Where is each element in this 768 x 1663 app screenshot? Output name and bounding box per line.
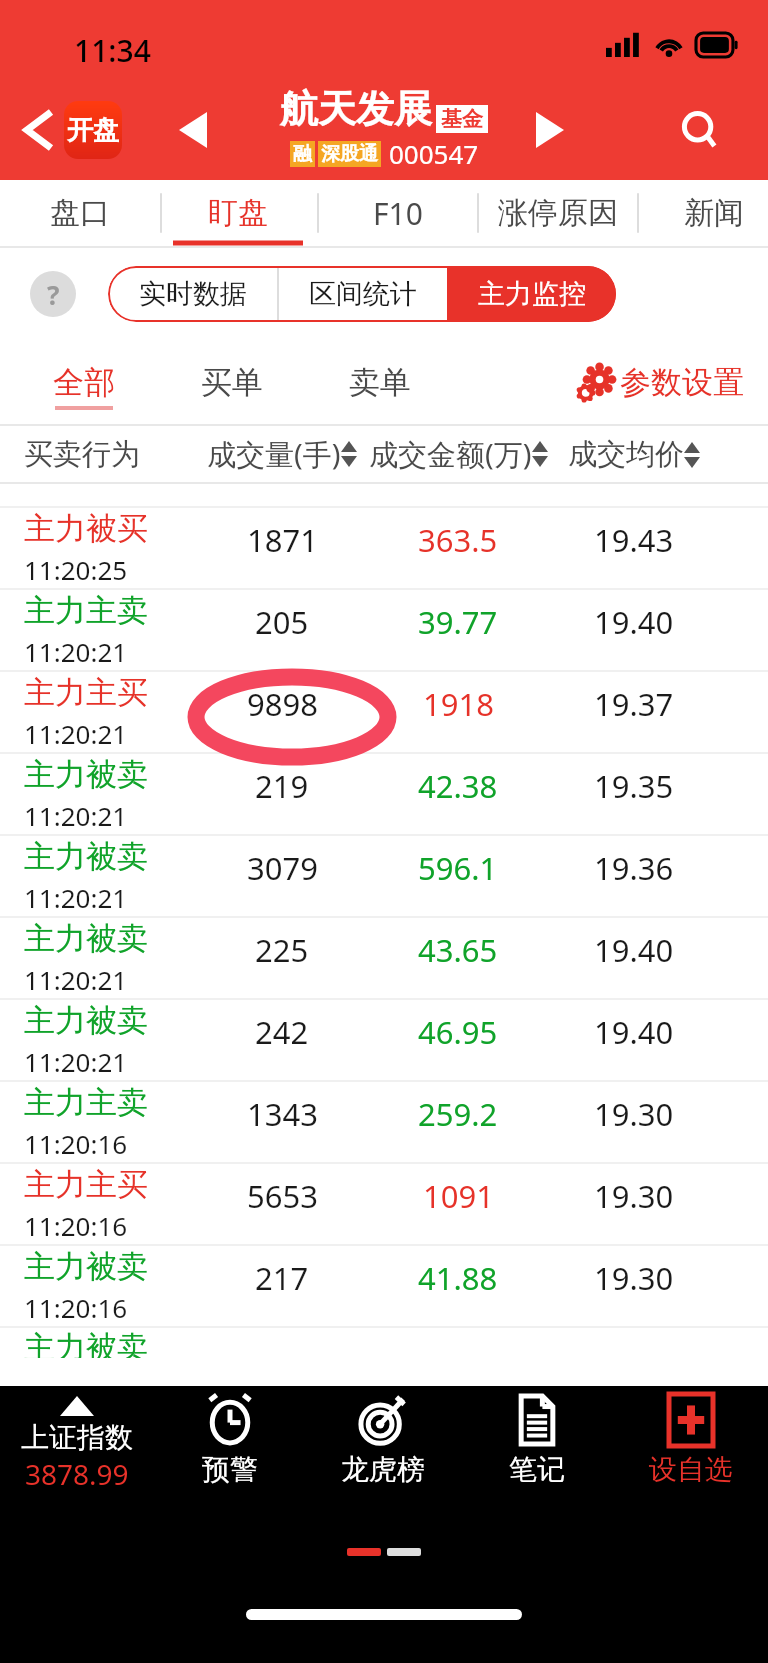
button[interactable]: 开盘 xyxy=(64,101,122,159)
staticText: 深股通 xyxy=(321,142,378,166)
button[interactable]: 主力主卖 xyxy=(0,590,768,670)
staticText: 主力监控 xyxy=(478,277,586,311)
staticText: 盯盘 xyxy=(208,194,268,232)
staticText: 11:20:16 xyxy=(24,1290,128,1325)
staticText: 259.2 xyxy=(418,1093,498,1135)
staticText: 11:20:21 xyxy=(24,798,128,833)
staticText: 涨停原因 xyxy=(498,194,618,232)
staticText: 1091 xyxy=(423,1175,494,1217)
button[interactable]: 主力主卖 xyxy=(0,1082,768,1162)
button[interactable]: 新闻 xyxy=(652,180,768,246)
staticText: 开盘 xyxy=(67,114,119,147)
button[interactable]: 笔记 xyxy=(460,1386,614,1506)
button[interactable]: 设自选 xyxy=(614,1386,768,1506)
button[interactable]: 主力被卖 xyxy=(0,918,768,998)
button[interactable]: 区间统计 xyxy=(278,266,447,322)
button[interactable]: 卖单 xyxy=(320,340,440,424)
staticText: 主力主买 xyxy=(24,1165,148,1204)
button[interactable]: 盘口 xyxy=(18,180,142,246)
button[interactable]: 主力被卖 xyxy=(0,1000,768,1080)
staticText: 217 xyxy=(255,1257,309,1299)
staticText: 19.40 xyxy=(594,1011,674,1053)
staticText: 19.30 xyxy=(594,1257,674,1299)
staticText: 主力主卖 xyxy=(24,591,148,630)
staticText: 46.95 xyxy=(418,1011,498,1053)
staticText: 主力主买 xyxy=(24,673,148,712)
staticText: 11:20:16 xyxy=(24,1126,128,1161)
button[interactable]: 全部 xyxy=(24,340,144,424)
staticText: 参数设置 xyxy=(620,363,744,402)
staticText: 主力被买 xyxy=(24,509,148,548)
button[interactable]: 上证指数 xyxy=(0,1386,153,1506)
staticText: 主力被卖 xyxy=(24,837,148,876)
staticText: 11:34 xyxy=(74,30,151,71)
staticText: 19.35 xyxy=(594,765,674,807)
staticText: 主力被卖 xyxy=(24,1328,148,1358)
button[interactable]: 涨停原因 xyxy=(496,180,620,246)
button[interactable]: 主力被买 xyxy=(0,508,768,588)
button[interactable]: 盯盘 xyxy=(176,180,300,246)
staticText: 19.30 xyxy=(594,1175,674,1217)
button[interactable]: 主力主买 xyxy=(0,1164,768,1244)
staticText: 43.65 xyxy=(418,929,498,971)
button[interactable]: 主力监控 xyxy=(447,266,616,322)
staticText: 上证指数 xyxy=(21,1420,133,1455)
staticText: 1343 xyxy=(247,1093,318,1135)
button[interactable]: Back xyxy=(14,105,64,155)
staticText: 买卖行为 xyxy=(24,436,140,473)
staticText: 19.43 xyxy=(594,519,674,561)
button[interactable]: F10 xyxy=(336,180,460,246)
staticText: 11:20:21 xyxy=(24,634,128,669)
staticText: 区间统计 xyxy=(309,277,417,311)
button[interactable]: Help xyxy=(30,271,76,317)
button[interactable]: 买单 xyxy=(172,340,292,424)
staticText: 实时数据 xyxy=(139,277,247,311)
staticText: 11:20:21 xyxy=(24,716,128,751)
staticText: 242 xyxy=(255,1011,309,1053)
staticText: 363.5 xyxy=(418,519,498,561)
staticText: 41.88 xyxy=(418,1257,498,1299)
staticText: 3878.99 xyxy=(25,1455,129,1493)
staticText: 19.36 xyxy=(594,847,674,889)
staticText: 主力主卖 xyxy=(24,1083,148,1122)
staticText: 42.38 xyxy=(418,765,498,807)
staticText: 融 xyxy=(293,142,312,166)
button[interactable]: Next stock xyxy=(522,102,578,158)
staticText: 龙虎榜 xyxy=(341,1452,425,1487)
button[interactable]: 主力被卖 xyxy=(0,1246,768,1326)
staticText: 205 xyxy=(255,601,309,643)
staticText: 主力被卖 xyxy=(24,1247,148,1286)
button[interactable]: Search xyxy=(672,102,728,158)
staticText: 11:20:16 xyxy=(24,1208,128,1243)
button[interactable]: 主力主买 xyxy=(0,672,768,752)
staticText: 成交均价 xyxy=(568,436,684,473)
staticText: 000547 xyxy=(389,136,479,171)
button[interactable]: Previous stock xyxy=(165,102,221,158)
staticText: 11:20:21 xyxy=(24,962,128,997)
staticText: 11:20:21 xyxy=(24,1044,128,1079)
staticText: 219 xyxy=(255,765,309,807)
button[interactable]: 实时数据 xyxy=(108,266,278,322)
staticText: 1918 xyxy=(423,683,494,725)
staticText: 39.77 xyxy=(418,601,498,643)
button[interactable]: 预警 xyxy=(153,1386,306,1506)
staticText: 19.30 xyxy=(594,1093,674,1135)
staticText: 全部 xyxy=(53,363,115,402)
staticText: 新闻 xyxy=(684,194,744,232)
staticText: F10 xyxy=(373,193,423,234)
button[interactable]: 主力被卖 xyxy=(0,836,768,916)
button[interactable]: 参数设置 xyxy=(576,361,744,403)
staticText: 596.1 xyxy=(418,847,498,889)
staticText: 1871 xyxy=(247,519,318,561)
staticText: 预警 xyxy=(202,1452,258,1487)
staticText: 卖单 xyxy=(349,363,411,402)
button[interactable]: 主力被卖 xyxy=(0,754,768,834)
button[interactable]: 龙虎榜 xyxy=(306,1386,460,1506)
staticText: 设自选 xyxy=(649,1452,733,1487)
staticText: 3079 xyxy=(247,847,318,889)
staticText: 笔记 xyxy=(509,1452,565,1487)
staticText: 11:20:21 xyxy=(24,880,128,915)
staticText: 成交金额(万) xyxy=(369,434,532,474)
staticText: 11:20:25 xyxy=(24,498,128,520)
staticText: 19.40 xyxy=(594,601,674,643)
